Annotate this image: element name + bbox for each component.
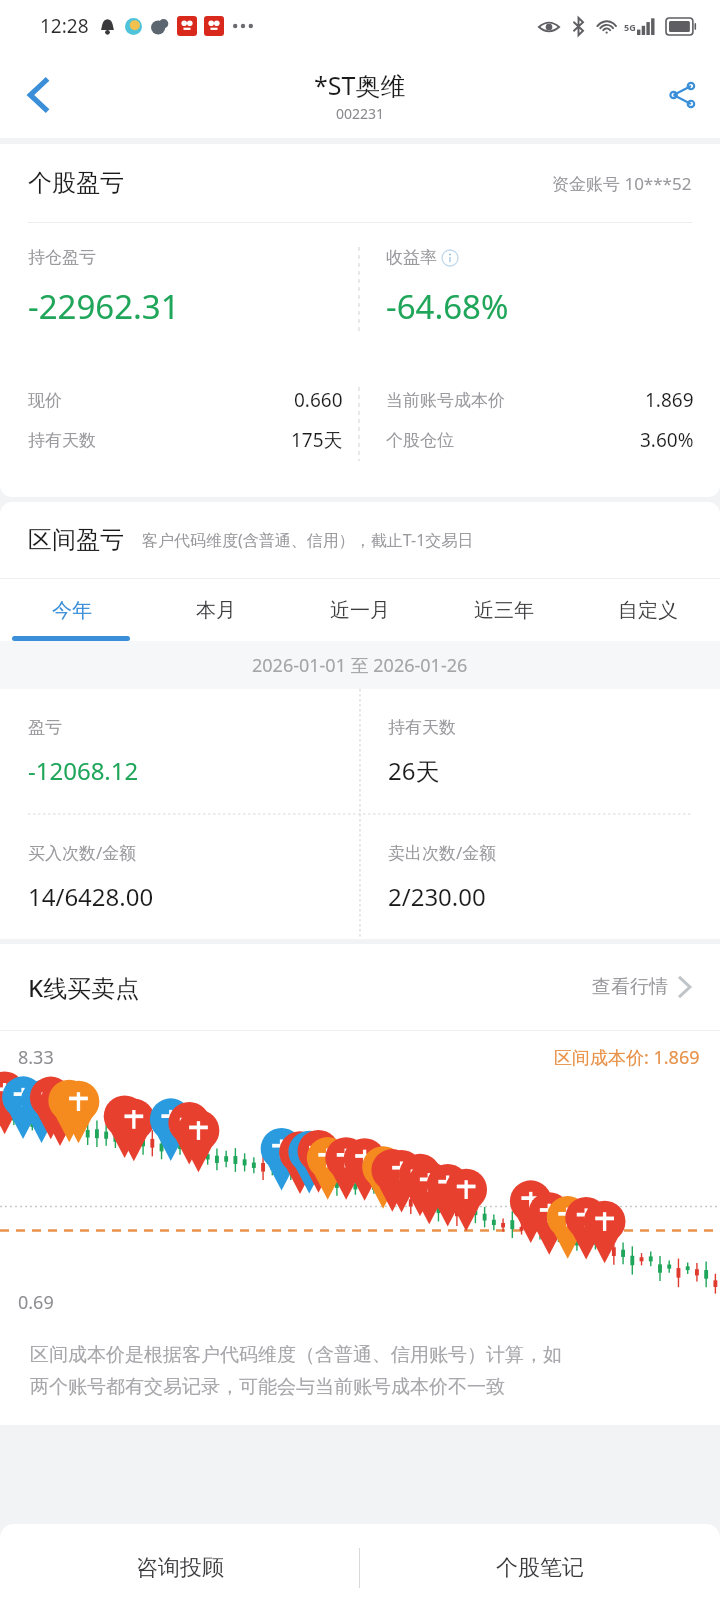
staticText: 2026-01-01 至 2026-01-26: [252, 653, 468, 678]
staticText: 8.33: [18, 1045, 54, 1070]
staticText: 12:28: [40, 13, 89, 39]
staticText: 客户代码维度(含普通、信用），截止T-1交易日: [142, 529, 474, 551]
staticText: 现价: [28, 390, 62, 411]
staticText: *ST奥维: [314, 68, 406, 102]
staticText: 卖出次数/金额: [388, 841, 497, 864]
staticText: 咨询投顾: [136, 1554, 224, 1582]
staticText: 自定义: [618, 598, 678, 623]
staticText: 区间成本价: 1.869: [554, 1045, 700, 1070]
staticText: 0.660: [294, 387, 343, 413]
staticText: 5G: [624, 21, 636, 33]
staticText: 3.60%: [640, 427, 694, 453]
staticText: 1.869: [645, 387, 694, 413]
staticText: 收益率: [386, 247, 437, 268]
staticText: 26天: [388, 754, 440, 787]
staticText: 个股盈亏: [28, 168, 124, 198]
staticText: 资金账号 10***52: [552, 172, 692, 195]
staticText: 区间盈亏: [28, 525, 124, 555]
staticText: 0.69: [18, 1290, 54, 1315]
staticText: 查看行情: [592, 975, 668, 999]
staticText: 002231: [336, 104, 385, 123]
staticText: -64.68%: [386, 284, 509, 329]
staticText: 近三年: [474, 598, 534, 623]
staticText: 14/6428.00: [28, 880, 154, 913]
staticText: 本月: [196, 598, 236, 623]
staticText: 175天: [291, 427, 343, 453]
staticText: 当前账号成本价: [386, 390, 505, 411]
button[interactable]: Share: [644, 52, 720, 138]
staticText: 买入次数/金额: [28, 841, 137, 864]
button[interactable]: K线买卖点: [0, 944, 720, 1030]
staticText: 近一月: [330, 598, 390, 623]
staticText: 2/230.00: [388, 880, 486, 913]
staticText: 区间成本价是根据客户代码维度（含普通、信用账号）计算，如 两个账号都有交易记录，…: [30, 1343, 562, 1399]
button[interactable]: Back: [0, 52, 76, 138]
staticText: 持仓盈亏: [28, 247, 96, 268]
staticText: -12068.12: [28, 754, 139, 787]
staticText: 个股笔记: [496, 1554, 584, 1582]
button[interactable]: 咨询投顾: [0, 1524, 359, 1612]
button[interactable]: 近三年: [432, 579, 576, 641]
button[interactable]: 自定义: [576, 579, 720, 641]
button[interactable]: 近一月: [288, 579, 432, 641]
button[interactable]: 个股笔记: [360, 1524, 720, 1612]
staticText: 今年: [52, 598, 92, 623]
staticText: 持有天数: [28, 430, 96, 451]
staticText: 盈亏: [28, 717, 62, 738]
staticText: 个股仓位: [386, 430, 454, 451]
staticText: -22962.31: [28, 284, 180, 329]
staticText: K线买卖点: [28, 971, 140, 1004]
button[interactable]: 今年: [0, 579, 144, 641]
staticText: 持有天数: [388, 717, 456, 738]
button[interactable]: 本月: [144, 579, 288, 641]
